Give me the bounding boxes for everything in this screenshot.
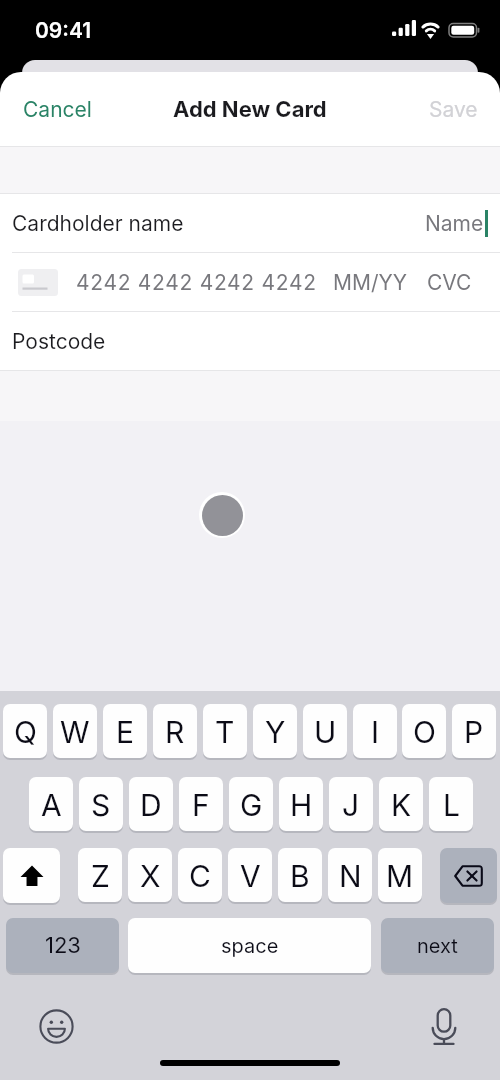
button[interactable]: H: [279, 777, 323, 831]
staticText: L: [443, 787, 460, 823]
staticText: U: [314, 714, 337, 750]
button[interactable]: R: [153, 704, 197, 758]
staticText: 09:41: [35, 18, 92, 43]
button[interactable]: Shift: [3, 848, 60, 903]
button[interactable]: Dictation: [418, 1001, 470, 1053]
button[interactable]: T: [203, 704, 247, 758]
staticText: Save: [429, 97, 478, 122]
staticText: A: [41, 787, 62, 823]
button[interactable]: U: [303, 704, 347, 758]
staticText: V: [240, 858, 261, 894]
button[interactable]: Z: [78, 848, 122, 902]
button[interactable]: Postcode: [0, 312, 500, 370]
staticText: space: [221, 934, 279, 958]
staticText: G: [240, 787, 263, 823]
button[interactable]: F: [179, 777, 223, 831]
button[interactable]: G: [229, 777, 273, 831]
staticText: D: [140, 787, 162, 823]
staticText: Add New Card: [173, 96, 327, 123]
staticText: R: [165, 714, 185, 750]
button[interactable]: L: [429, 777, 473, 831]
button[interactable]: M: [378, 848, 422, 902]
staticText: 4242 4242 4242 4242: [76, 270, 317, 295]
button[interactable]: D: [129, 777, 173, 831]
staticText: Cardholder name: [12, 211, 184, 236]
button[interactable]: K: [379, 777, 423, 831]
button[interactable]: A: [29, 777, 73, 831]
staticText: I: [371, 714, 380, 750]
staticText: Postcode: [12, 329, 106, 354]
button[interactable]: Backspace: [440, 848, 497, 903]
button[interactable]: P: [452, 704, 496, 758]
staticText: W: [60, 714, 90, 750]
button[interactable]: C: [178, 848, 222, 902]
button[interactable]: space: [128, 918, 371, 973]
staticText: S: [91, 787, 111, 823]
button[interactable]: Save: [411, 81, 500, 138]
staticText: next: [417, 934, 458, 958]
button[interactable]: V: [228, 848, 272, 902]
staticText: MM/YY: [333, 270, 408, 295]
staticText: Q: [14, 714, 37, 750]
staticText: M: [386, 858, 414, 894]
staticText: Cancel: [23, 97, 92, 122]
button[interactable]: Y: [253, 704, 297, 758]
staticText: K: [391, 787, 412, 823]
button[interactable]: I: [353, 704, 397, 758]
staticText: E: [116, 714, 135, 750]
staticText: O: [413, 714, 436, 750]
staticText: CVC: [427, 270, 472, 295]
staticText: F: [192, 787, 210, 823]
staticText: J: [342, 787, 360, 823]
staticText: C: [189, 858, 211, 894]
button[interactable]: 123: [6, 918, 119, 973]
button[interactable]: S: [79, 777, 123, 831]
staticText: Z: [91, 858, 110, 894]
staticText: 123: [45, 932, 81, 959]
staticText: B: [290, 858, 310, 894]
button[interactable]: Q: [3, 704, 47, 758]
button[interactable]: N: [328, 848, 372, 902]
button[interactable]: B: [278, 848, 322, 902]
button[interactable]: next: [381, 918, 494, 973]
button[interactable]: 4242 4242 4242 4242: [0, 253, 500, 311]
staticText: X: [140, 858, 161, 894]
button[interactable]: O: [402, 704, 446, 758]
staticText: Name: [425, 211, 484, 236]
button[interactable]: E: [103, 704, 147, 758]
staticText: H: [290, 787, 313, 823]
button[interactable]: Cancel: [0, 81, 110, 138]
button[interactable]: J: [329, 777, 373, 831]
staticText: N: [339, 858, 362, 894]
button[interactable]: Emoji keyboard: [30, 1000, 82, 1052]
staticText: T: [215, 714, 235, 750]
button[interactable]: Cardholder name: [0, 194, 500, 252]
button[interactable]: X: [128, 848, 172, 902]
staticText: Y: [265, 714, 286, 750]
staticText: P: [464, 714, 484, 750]
button[interactable]: W: [53, 704, 97, 758]
